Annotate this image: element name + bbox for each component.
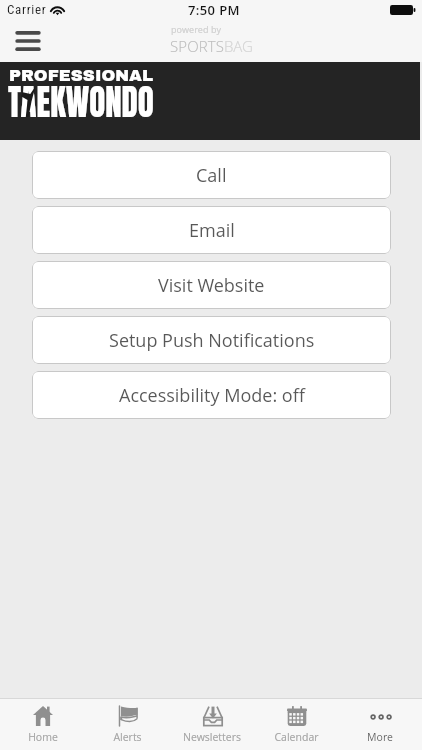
button[interactable]: Setup Push Notifications [32, 316, 391, 364]
staticText: Setup Push Notifications [109, 328, 315, 353]
staticText: TAEKWONDO [8, 75, 154, 129]
staticText: Calendar [274, 730, 319, 744]
staticText: Email [189, 218, 235, 243]
staticText: BAG [224, 36, 253, 56]
button[interactable]: Call [32, 151, 391, 199]
staticText: Newsletters [183, 730, 241, 744]
staticText: PROFESSIONAL [9, 65, 153, 85]
button[interactable]: Menu [4, 22, 52, 60]
staticText: Alerts [113, 730, 142, 744]
staticText: More [367, 730, 393, 744]
button[interactable]: Newsletters [170, 699, 254, 750]
button[interactable]: More [338, 699, 422, 750]
staticText: 7:50 PM [188, 1, 241, 19]
staticText: Call [196, 163, 227, 188]
staticText: Accessibility Mode: off [119, 383, 305, 408]
staticText: the best [108, 107, 150, 124]
button[interactable]: Email [32, 206, 391, 254]
staticText: Carrier [7, 2, 47, 17]
button[interactable]: Accessibility Mode: off [32, 371, 391, 419]
staticText: powered by [171, 23, 222, 35]
button[interactable]: Calendar [254, 699, 338, 750]
button[interactable]: Home [0, 699, 85, 750]
button[interactable]: Alerts [85, 699, 170, 750]
staticText: SPORTS [170, 36, 224, 56]
staticText: Visit Website [158, 273, 265, 298]
staticText: Home [28, 730, 58, 744]
button[interactable]: Visit Website [32, 261, 391, 309]
